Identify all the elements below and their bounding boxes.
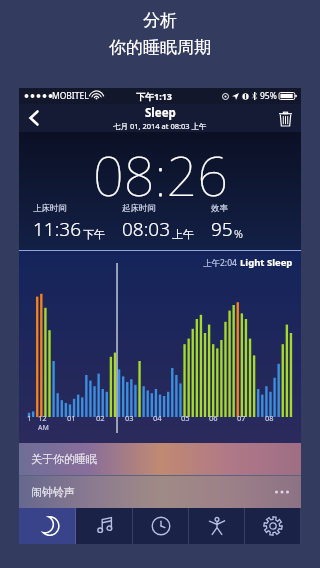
button[interactable]: Activity [189,508,245,544]
button[interactable]: Sounds [76,508,133,544]
staticText: 关于你的睡眠 [31,452,97,466]
staticText: 上床时间 [33,203,67,214]
staticText: 七月 01, 2014 at 08:03 上午 [113,121,207,131]
staticText: 1 [27,413,32,423]
staticText: MOBITEL [52,90,89,102]
button[interactable]: Alarm [133,508,189,544]
button[interactable]: Sleep [19,508,76,544]
staticText: 分析 [143,10,177,31]
staticText: 08:26 [93,138,228,212]
staticText: 95% [260,90,277,102]
staticText: 01 [67,413,76,423]
staticText: 下午1:13 [136,90,172,102]
staticText: 08:03 [122,216,171,242]
staticText: 效率 [211,203,228,214]
staticText: 上午 [172,227,194,241]
staticText: 05 [181,413,190,423]
button[interactable]: Delete [269,104,301,132]
staticText: Sleep [145,105,176,121]
button[interactable]: 关于你的睡眠 [19,443,301,475]
staticText: 04 [153,413,162,423]
staticText: 下午 [83,227,105,241]
staticText: Light Sleep [240,256,293,269]
staticText: 起床时间 [122,203,156,214]
staticText: 02 [96,413,105,423]
staticText: % [234,226,243,241]
staticText: 11:36 [33,216,82,242]
button[interactable]: Settings [245,508,301,544]
button[interactable]: Back [19,104,49,132]
staticText: 08 [265,413,274,423]
button[interactable]: 闹钟铃声 [19,476,301,508]
staticText: AM [38,423,49,433]
staticText: 你的睡眠周期 [109,37,211,58]
staticText: 07 [237,413,246,423]
staticText: 上午2:04 [203,257,240,269]
staticText: 06 [209,413,218,423]
staticText: 95 [211,216,233,242]
staticText: 12 [38,413,47,423]
staticText: 闹钟铃声 [31,485,75,499]
staticText: 03 [125,413,134,423]
